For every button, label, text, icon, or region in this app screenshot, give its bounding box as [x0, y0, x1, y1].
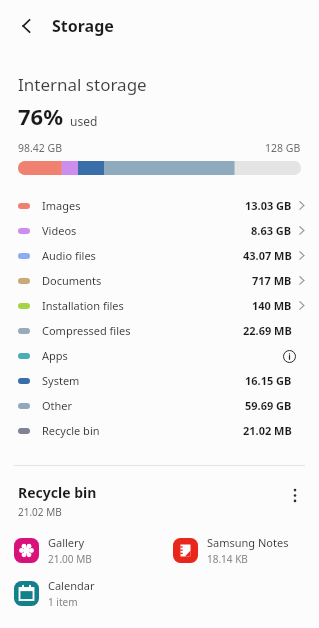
staticText: Internal storage [18, 73, 147, 96]
button[interactable]: Back [12, 11, 42, 41]
staticText: used [70, 113, 98, 129]
button[interactable]: Samsung Notes [159, 535, 319, 566]
staticText: 21.02 MB [18, 505, 62, 519]
staticText: Images [42, 198, 81, 213]
button[interactable]: Installation files [0, 293, 319, 318]
staticText: 22.69 MB [243, 323, 292, 338]
staticText: Samsung Notes [207, 535, 289, 550]
staticText: 21.02 MB [243, 423, 292, 438]
staticText: Videos [42, 223, 77, 238]
staticText: Recycle bin [42, 423, 100, 438]
button[interactable]: More options [283, 483, 307, 507]
staticText: Documents [42, 273, 102, 288]
staticText: System [42, 373, 80, 388]
staticText: 717 MB [252, 273, 292, 288]
staticText: 43.07 MB [243, 248, 292, 263]
staticText: Audio files [42, 248, 96, 263]
staticText: 128 GB [265, 141, 301, 155]
button[interactable]: System [0, 368, 319, 393]
button[interactable]: Other [0, 393, 319, 418]
staticText: 21.00 MB [48, 552, 92, 566]
staticText: 76% [18, 101, 64, 131]
staticText: 18.14 KB [207, 552, 248, 566]
button[interactable]: Images [0, 193, 319, 218]
staticText: Compressed files [42, 323, 131, 338]
staticText: Other [42, 398, 73, 413]
staticText: 98.42 GB [18, 141, 63, 155]
staticText: Installation files [42, 298, 124, 313]
staticText: Recycle bin [18, 483, 97, 502]
staticText: Gallery [48, 535, 85, 550]
staticText: 8.63 GB [251, 223, 292, 238]
button[interactable]: Documents [0, 268, 319, 293]
staticText: 140 MB [252, 298, 292, 313]
staticText: 16.15 GB [245, 373, 292, 388]
button[interactable]: Recycle bin [0, 418, 319, 443]
button[interactable]: Calendar [0, 578, 159, 609]
button[interactable]: Apps info [281, 348, 297, 364]
button[interactable]: Apps [0, 343, 319, 368]
staticText: Calendar [48, 578, 95, 593]
staticText: Storage [52, 15, 114, 37]
staticText: 1 item [48, 595, 78, 609]
button[interactable]: Gallery [0, 535, 159, 566]
staticText: 59.69 GB [245, 398, 292, 413]
button[interactable]: Compressed files [0, 318, 319, 343]
staticText: 13.03 GB [245, 198, 292, 213]
button[interactable]: Videos [0, 218, 319, 243]
button[interactable]: Audio files [0, 243, 319, 268]
staticText: Apps [42, 348, 68, 363]
